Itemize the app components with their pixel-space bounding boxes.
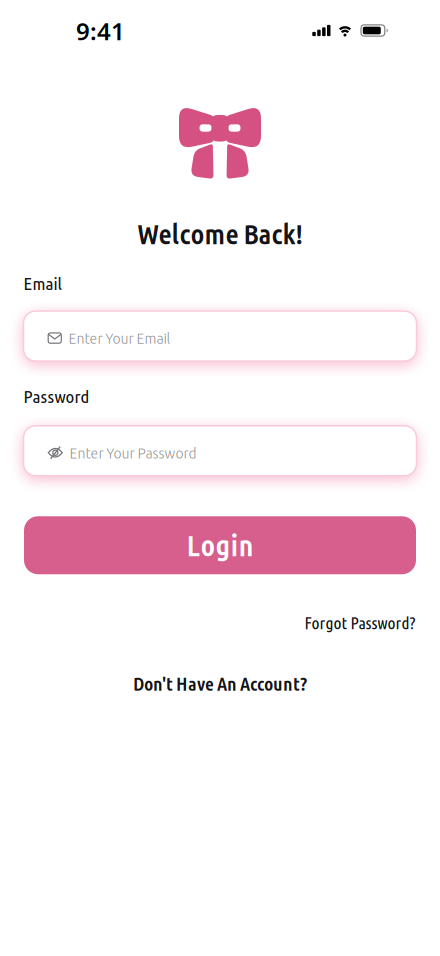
staticText: 9:41: [76, 15, 125, 47]
staticText: Email: [23, 274, 61, 293]
staticText: Welcome Back!: [137, 219, 302, 249]
button[interactable]: Forgot Password?: [304, 614, 415, 632]
staticText: Login: [186, 529, 253, 562]
button[interactable]: Don't Have An Account?: [133, 673, 307, 694]
staticText: Enter Your Email: [68, 329, 170, 347]
staticText: Forgot Password?: [304, 614, 415, 632]
button[interactable]: Enter Your Password: [23, 426, 416, 476]
staticText: Enter Your Password: [70, 444, 197, 461]
button[interactable]: Login: [24, 516, 416, 574]
staticText: Password: [23, 388, 89, 406]
button[interactable]: Enter Your Email: [23, 311, 416, 361]
staticText: Don't Have An Account?: [133, 673, 307, 694]
